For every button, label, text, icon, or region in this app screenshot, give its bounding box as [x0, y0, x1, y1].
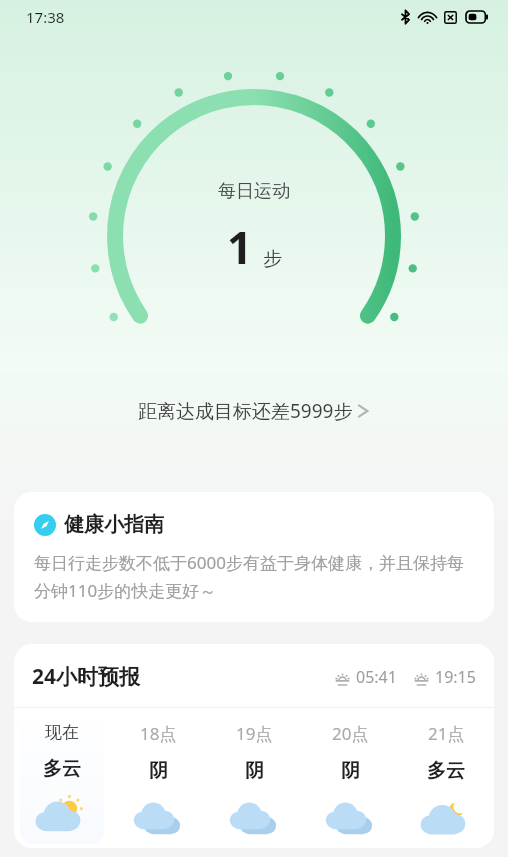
staticText: 现在	[45, 722, 79, 743]
button[interactable]: 19点	[206, 708, 302, 831]
button[interactable]: 健康小指南	[14, 492, 494, 622]
button[interactable]: 21点	[398, 708, 494, 831]
staticText: 步	[263, 247, 282, 271]
staticText: 距离达成目标还差5999步	[138, 398, 353, 424]
staticText: 05:41	[356, 666, 397, 688]
staticText: 每日运动	[218, 180, 290, 203]
staticText: 多云	[427, 759, 465, 783]
button[interactable]: 距离达成目标还差5999步	[0, 392, 508, 430]
staticText: 健康小指南	[64, 512, 164, 537]
button[interactable]: 20点	[302, 708, 398, 831]
staticText: 19点	[236, 722, 273, 745]
staticText: 24小时预报	[32, 662, 141, 691]
staticText: 18点	[140, 722, 177, 745]
staticText: 1	[227, 217, 253, 277]
staticText: 每日行走步数不低于6000步有益于身体健康，并且保持每分钟110步的快走更好～	[34, 551, 474, 602]
button[interactable]: 18点	[110, 708, 206, 831]
button[interactable]: 24小时预报	[14, 644, 494, 707]
staticText: 阴	[245, 759, 264, 783]
button[interactable]: 现在	[14, 708, 110, 829]
staticText: 17:38	[26, 7, 65, 27]
staticText: 19:15	[435, 666, 476, 688]
staticText: 阴	[149, 759, 168, 783]
staticText: 阴	[341, 759, 360, 783]
staticText: 多云	[43, 757, 81, 781]
staticText: 21点	[428, 722, 465, 745]
staticText: 20点	[332, 722, 369, 745]
